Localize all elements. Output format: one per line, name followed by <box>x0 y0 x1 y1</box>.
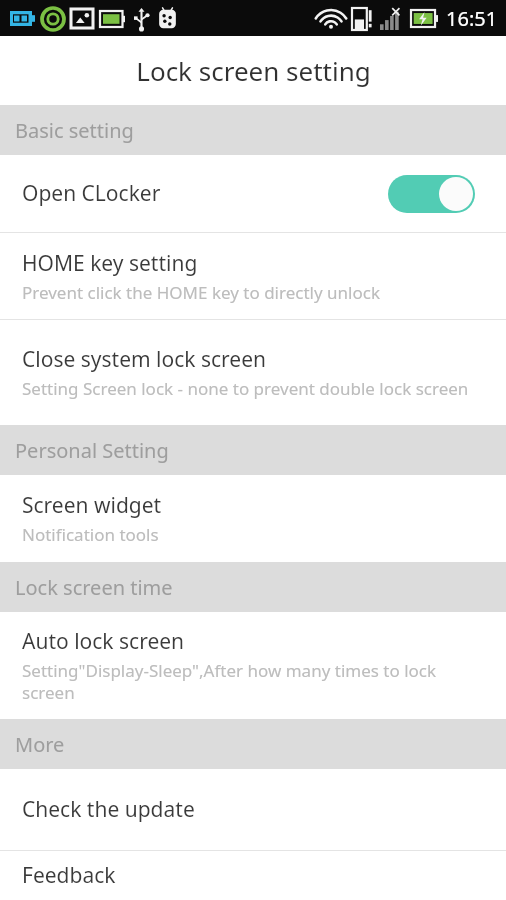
staticText: Auto lock screen <box>22 627 185 656</box>
button[interactable]: Close system lock screen <box>0 320 506 425</box>
staticText: Lock screen time <box>15 574 173 601</box>
staticText: Basic setting <box>15 117 134 144</box>
staticText: Setting Screen lock - none to prevent do… <box>22 377 469 400</box>
staticText: Prevent click the HOME key to directly u… <box>22 281 380 304</box>
button[interactable]: HOME key setting <box>0 233 506 319</box>
staticText: Personal Setting <box>15 437 169 464</box>
button[interactable]: Auto lock screen <box>0 612 506 719</box>
staticText: Lock screen setting <box>136 53 371 88</box>
button[interactable]: Check the update <box>0 769 506 850</box>
button[interactable]: Open CLocker <box>0 155 506 232</box>
button[interactable]: Open CLocker, on <box>388 175 475 213</box>
button[interactable]: Feedback <box>0 851 506 900</box>
staticText: Setting"Display-Sleep",After how many ti… <box>22 659 486 704</box>
staticText: 16:51 <box>446 5 498 32</box>
staticText: Check the update <box>22 795 195 824</box>
staticText: Open CLocker <box>22 179 388 208</box>
staticText: Feedback <box>22 861 116 890</box>
staticText: HOME key setting <box>22 249 198 278</box>
staticText: More <box>15 731 65 758</box>
staticText: Notification tools <box>22 523 159 546</box>
staticText: Screen widget <box>22 491 162 520</box>
button[interactable]: Screen widget <box>0 475 506 562</box>
staticText: Close system lock screen <box>22 345 267 374</box>
